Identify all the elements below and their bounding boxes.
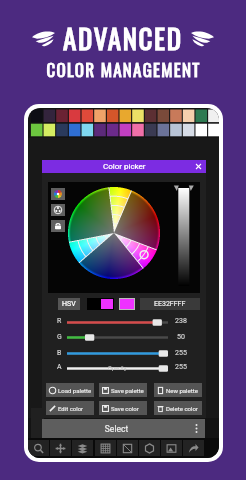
button[interactable]: Image	[161, 440, 182, 456]
button[interactable]: Share	[183, 440, 204, 456]
staticText: 255	[171, 363, 191, 371]
staticText: Save palette	[111, 387, 144, 394]
staticText: ADVANCED	[63, 18, 183, 58]
staticText: Select	[42, 424, 191, 434]
button[interactable]: Shape	[139, 440, 160, 456]
staticText: EE32FFFF	[154, 300, 186, 308]
staticText: A	[57, 363, 62, 371]
button[interactable]: Search	[28, 440, 49, 456]
button[interactable]: Transform	[117, 440, 138, 456]
staticText: Color picker	[103, 162, 146, 171]
button[interactable]: Opacity	[67, 363, 168, 374]
other: Close	[196, 164, 201, 169]
staticText: Load palette	[58, 387, 92, 394]
button[interactable]	[67, 317, 168, 328]
staticText: Save color	[111, 405, 139, 412]
button[interactable]: Harmony	[51, 204, 65, 216]
staticText: Opacity	[108, 365, 127, 371]
staticText: G	[57, 333, 62, 341]
button[interactable]: Layers	[72, 440, 93, 456]
button[interactable]	[67, 348, 168, 359]
staticText: R	[57, 317, 62, 325]
button[interactable]: HSV	[58, 298, 80, 310]
staticText: 255	[171, 349, 191, 357]
button[interactable]	[67, 332, 168, 343]
button[interactable]: Delete color	[154, 401, 202, 415]
staticText: HSV	[62, 300, 76, 308]
button[interactable]: Grid	[95, 440, 116, 456]
button[interactable]: Lock	[51, 220, 65, 232]
staticText: B	[57, 349, 62, 357]
staticText: COLOR MANAGEMENT	[46, 57, 201, 82]
button[interactable]: Color wheel	[51, 188, 65, 200]
staticText: Delete color	[166, 405, 198, 412]
other: More options	[191, 423, 202, 434]
staticText: New palette	[166, 387, 198, 394]
button[interactable]: EE32FFFF	[140, 298, 200, 310]
button[interactable]: Edit color	[46, 401, 94, 415]
staticText: Edit color	[58, 405, 84, 412]
button[interactable]: Move	[50, 440, 71, 456]
staticText: 50	[171, 333, 191, 341]
button[interactable]: New palette	[154, 383, 202, 397]
button[interactable]: Save color	[99, 401, 147, 415]
button[interactable]: Select	[42, 419, 205, 438]
button[interactable]: Color picker	[42, 160, 206, 173]
button[interactable]: Save palette	[99, 383, 147, 397]
button[interactable]: Load palette	[46, 383, 94, 397]
staticText: 238	[171, 317, 191, 325]
